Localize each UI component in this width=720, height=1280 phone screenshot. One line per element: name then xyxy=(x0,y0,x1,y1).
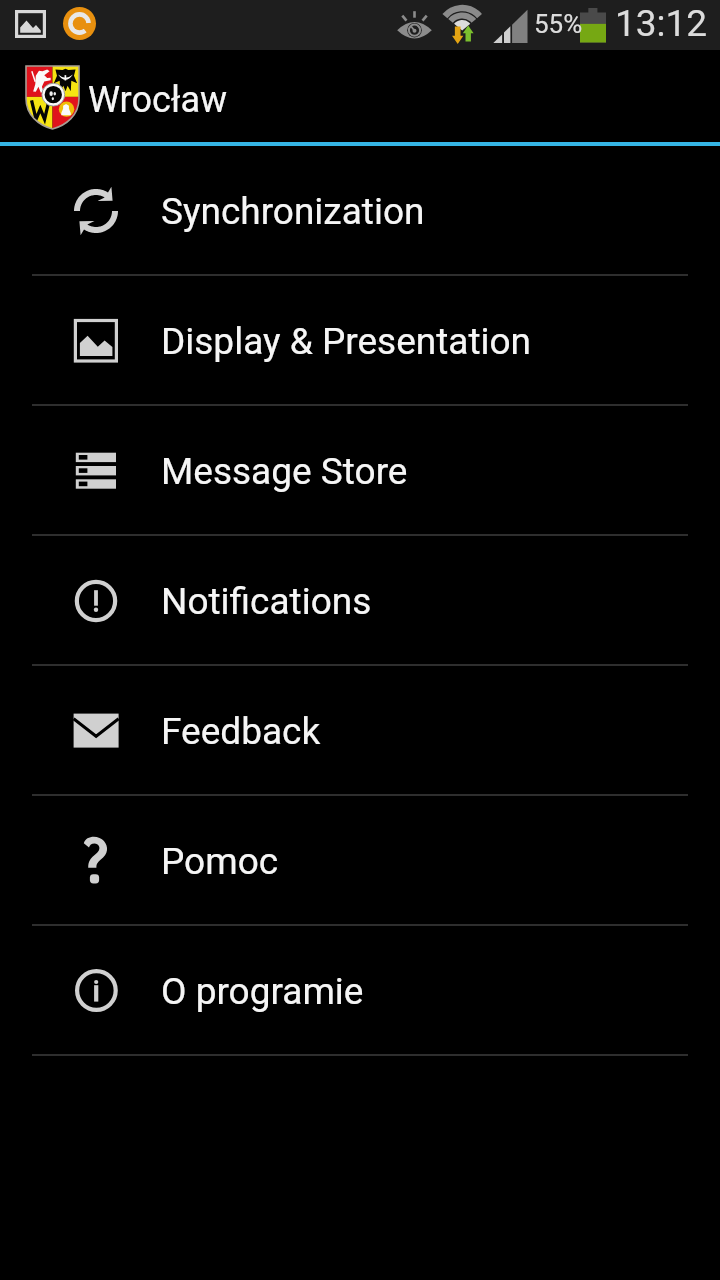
staticText: Message Store xyxy=(161,450,408,493)
staticText: 55% xyxy=(534,9,583,39)
button[interactable]: Wrocław coat of arms xyxy=(0,50,720,142)
staticText: O programie xyxy=(161,970,364,1013)
button[interactable]: Synchronization xyxy=(0,146,720,276)
button[interactable]: Notifications xyxy=(0,536,720,666)
button[interactable]: Message Store xyxy=(0,406,720,536)
staticText: Display & Presentation xyxy=(161,320,532,363)
button[interactable]: Pomoc xyxy=(0,796,720,926)
staticText: Wrocław xyxy=(88,79,228,121)
staticText: 13:12 xyxy=(615,2,708,45)
staticText: Synchronization xyxy=(161,190,425,233)
staticText: Feedback xyxy=(161,710,321,753)
button[interactable]: O programie xyxy=(0,926,720,1056)
button[interactable]: Display & Presentation xyxy=(0,276,720,406)
staticText: Notifications xyxy=(161,580,372,623)
staticText: Pomoc xyxy=(161,840,279,883)
button[interactable]: Feedback xyxy=(0,666,720,796)
other: Wrocław coat of arms xyxy=(26,66,79,129)
